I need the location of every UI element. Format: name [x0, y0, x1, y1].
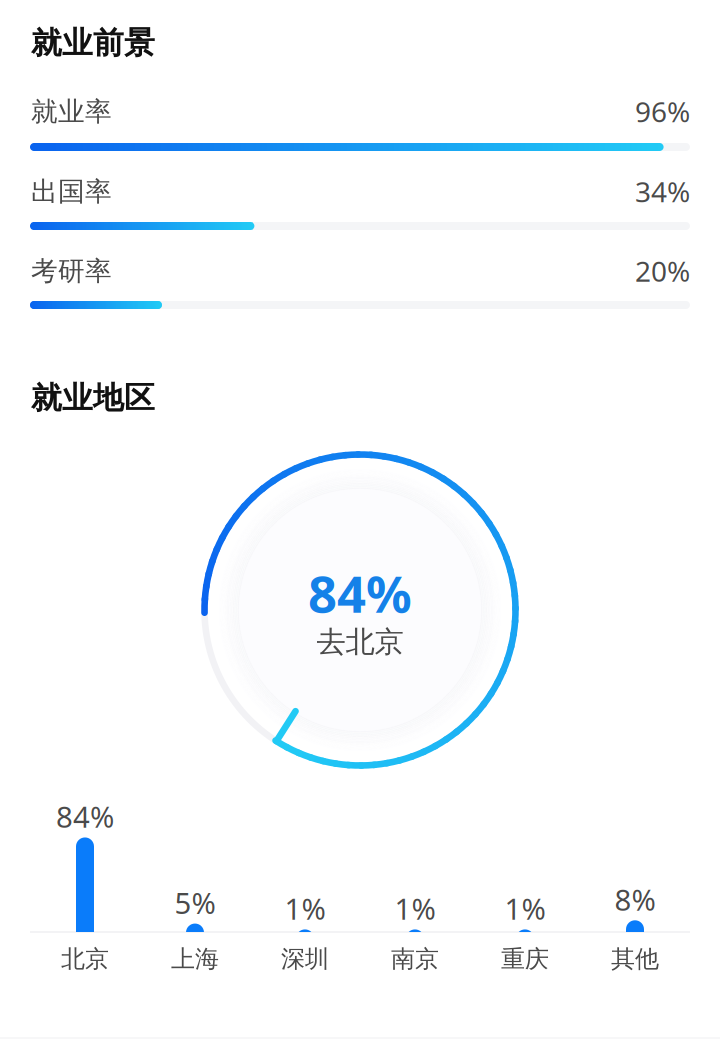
staticText: 5%: [174, 883, 215, 922]
staticText: 1%: [394, 889, 435, 928]
staticText: 1%: [284, 889, 325, 928]
staticText: 就业前景: [31, 24, 155, 62]
staticText: 出国率: [31, 175, 112, 208]
staticText: 8%: [614, 880, 655, 919]
staticText: 96%: [635, 93, 690, 130]
staticText: 84%: [308, 559, 412, 627]
staticText: 1%: [504, 889, 545, 928]
staticText: 重庆: [501, 944, 549, 974]
staticText: 北京: [61, 944, 109, 974]
staticText: 34%: [635, 173, 690, 210]
staticText: 南京: [391, 944, 439, 974]
staticText: 深圳: [281, 944, 329, 974]
staticText: 考研率: [31, 255, 112, 287]
staticText: 去北京: [316, 624, 403, 660]
staticText: 20%: [635, 252, 690, 290]
staticText: 上海: [171, 944, 219, 974]
staticText: 84%: [56, 797, 114, 836]
staticText: 就业率: [31, 95, 112, 128]
staticText: 其他: [611, 944, 659, 974]
staticText: 就业地区: [31, 379, 155, 417]
